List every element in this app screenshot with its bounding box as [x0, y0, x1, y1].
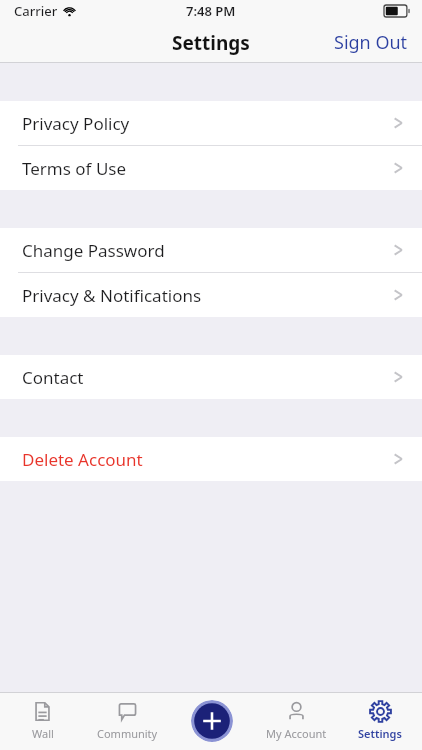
staticText: My Account — [266, 726, 327, 741]
button[interactable]: Add — [191, 700, 233, 742]
button[interactable]: Contact — [0, 355, 422, 399]
staticText: Change Password — [22, 239, 165, 262]
button[interactable]: Change Password — [0, 228, 422, 272]
staticText: Delete Account — [22, 448, 143, 471]
staticText: Community — [97, 726, 158, 741]
button[interactable]: Privacy & Notifications — [0, 273, 422, 317]
staticText: Privacy & Notifications — [22, 284, 202, 307]
button[interactable]: My Account — [254, 692, 338, 750]
button[interactable]: Terms of Use — [0, 146, 422, 190]
staticText: Sign Out — [334, 30, 408, 55]
staticText: Contact — [22, 366, 84, 389]
button[interactable]: Privacy Policy — [0, 101, 422, 145]
staticText: Settings — [358, 726, 402, 741]
button[interactable]: Delete Account — [0, 437, 422, 481]
staticText: Terms of Use — [22, 157, 127, 180]
button[interactable]: Settings — [338, 692, 422, 750]
staticText: Settings — [172, 30, 250, 56]
button[interactable]: Community — [85, 692, 170, 750]
staticText: Wall — [32, 726, 54, 741]
staticText: Privacy Policy — [22, 112, 130, 135]
button[interactable]: Wall — [0, 692, 85, 750]
button[interactable]: Sign Out — [320, 24, 422, 61]
staticText: Carrier — [14, 2, 58, 20]
staticText: 7:48 PM — [186, 2, 236, 20]
